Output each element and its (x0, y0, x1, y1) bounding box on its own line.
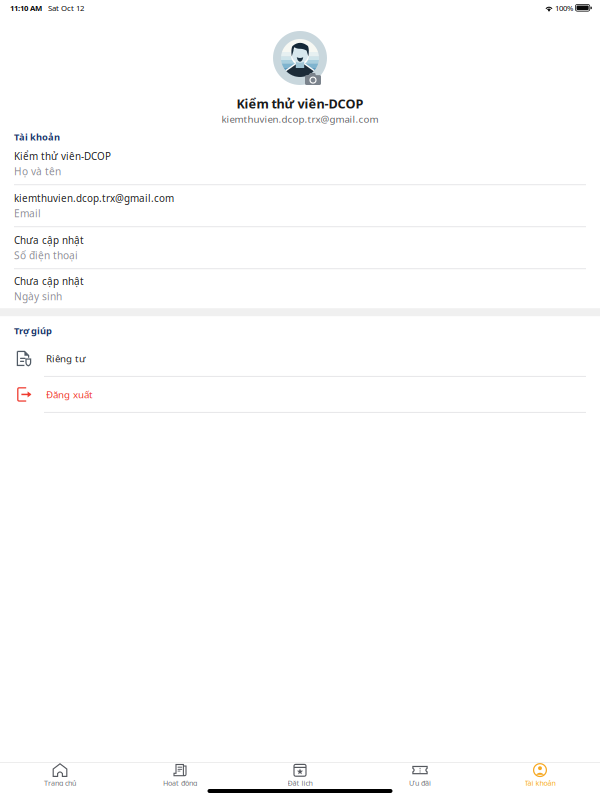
button[interactable]: Hoạt động (120, 763, 240, 786)
staticText: 100% (553, 3, 575, 13)
staticText: Trợ giúp (14, 324, 52, 337)
button[interactable]: Đăng xuất (0, 377, 600, 412)
staticText: Đăng xuất (46, 388, 93, 401)
staticText: kiemthuvien.dcop.trx@gmail.com (14, 191, 174, 205)
staticText: Họ và tên (14, 164, 61, 178)
button[interactable]: Riêng tư (0, 341, 600, 376)
staticText: Tài khoản (14, 130, 60, 143)
staticText: Riêng tư (46, 352, 86, 365)
staticText: Ngày sinh (14, 289, 62, 303)
staticText: kiemthuvien.dcop.trx@gmail.com (221, 112, 378, 126)
staticText: 11:10 AM (10, 3, 42, 13)
staticText: Kiểm thử viên-DCOP (14, 149, 111, 163)
button[interactable]: Chưa cập nhật (0, 269, 600, 308)
button[interactable]: Trang chủ (0, 763, 120, 786)
button[interactable]: Đặt lịch (240, 763, 360, 786)
button[interactable]: Kiểm thử viên-DCOP (0, 143, 600, 184)
button[interactable]: kiemthuvien.dcop.trx@gmail.com (0, 185, 600, 226)
staticText: Sat Oct 12 (42, 3, 84, 13)
staticText: Kiểm thử viên-DCOP (236, 95, 363, 112)
staticText: Đặt lịch (287, 778, 312, 788)
button[interactable]: Chưa cập nhật (0, 227, 600, 268)
staticText: Email (14, 206, 41, 220)
staticText: Số điện thoại (14, 248, 78, 262)
staticText: Hoạt động (163, 778, 197, 788)
staticText: Chưa cập nhật (14, 233, 84, 247)
staticText: Chưa cập nhật (14, 274, 84, 288)
button[interactable]: Tài khoản (480, 763, 600, 786)
button[interactable]: Ưu đãi (360, 763, 480, 786)
staticText: Ưu đãi (409, 778, 431, 788)
staticText: Trang chủ (44, 778, 76, 788)
staticText: Tài khoản (524, 778, 555, 788)
